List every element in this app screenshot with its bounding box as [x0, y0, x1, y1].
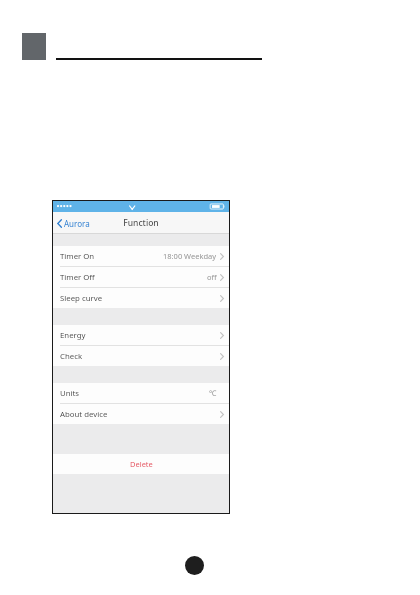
staticText: off	[207, 272, 217, 282]
staticText: Check	[60, 351, 83, 362]
staticText: About device	[60, 409, 108, 420]
staticText: Aurora	[64, 218, 90, 229]
staticText: Timer Off	[60, 272, 95, 283]
other: Back	[57, 219, 62, 228]
button[interactable]: Timer On	[53, 246, 229, 266]
button[interactable]: Energy	[53, 325, 229, 345]
staticText: ℃	[209, 388, 217, 398]
button[interactable]: Timer Off	[53, 267, 229, 287]
staticText: Sleep curve	[60, 293, 103, 304]
staticText: Energy	[60, 330, 86, 341]
staticText: Units	[60, 388, 80, 399]
button[interactable]: Back	[53, 215, 96, 232]
button[interactable]: Units	[53, 383, 229, 403]
staticText: 18:00 Weekday	[163, 251, 217, 261]
button[interactable]: Check	[53, 346, 229, 366]
button[interactable]: About device	[53, 404, 229, 424]
staticText: Delete	[130, 459, 153, 469]
button[interactable]: Delete	[53, 454, 229, 474]
staticText: Function	[123, 217, 159, 229]
button[interactable]: Sleep curve	[53, 288, 229, 308]
staticText: Timer On	[60, 251, 95, 262]
